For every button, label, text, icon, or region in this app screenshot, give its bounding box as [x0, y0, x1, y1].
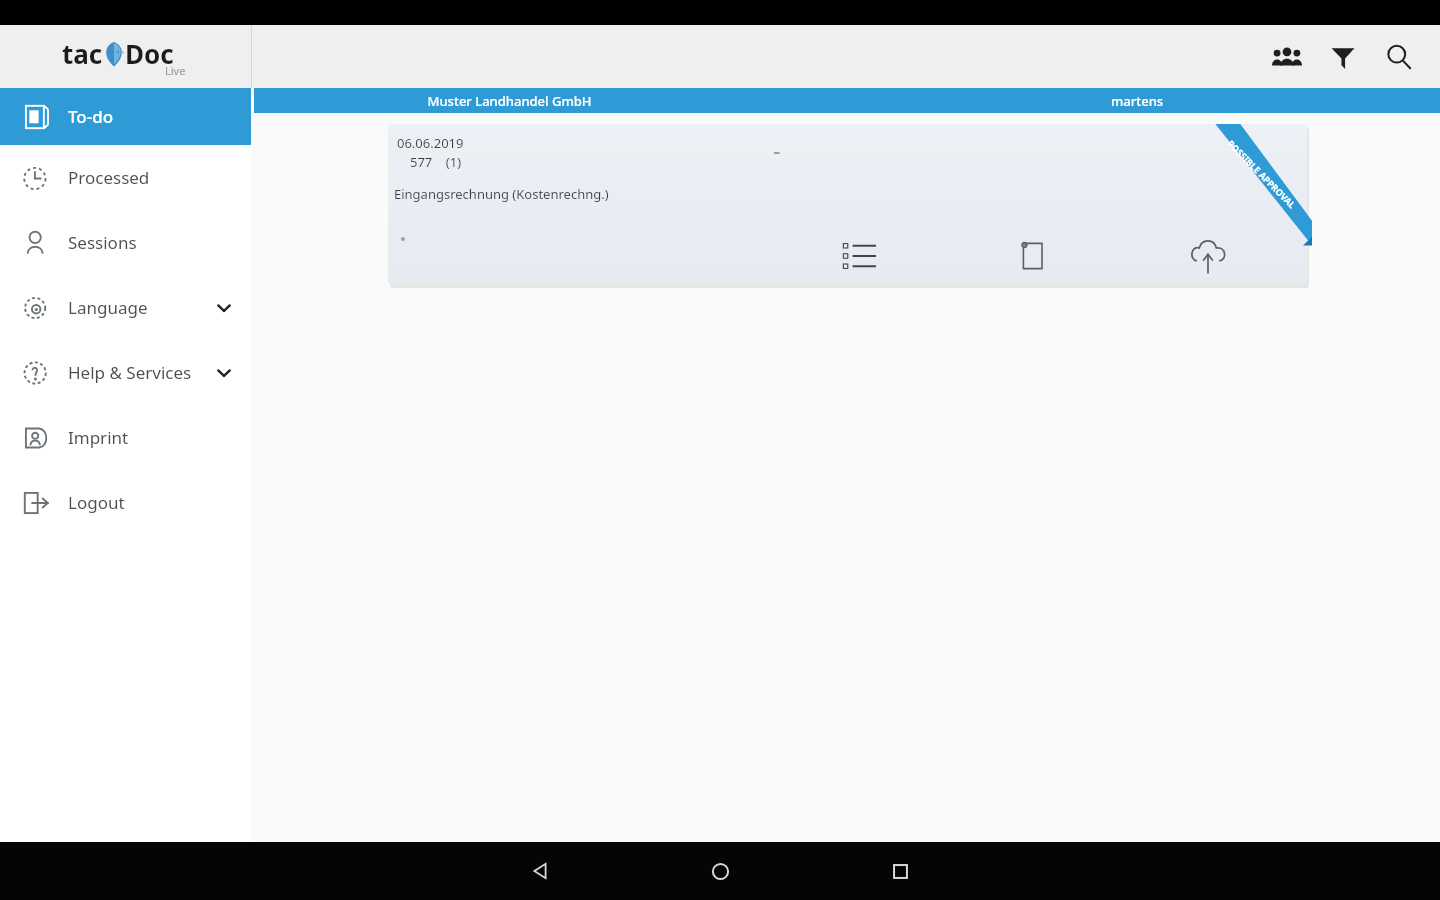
- staticText: 06.06.2019: [397, 134, 464, 152]
- button[interactable]: 06.06.2019: [388, 124, 1307, 284]
- button[interactable]: Upload to cloud: [1178, 234, 1238, 278]
- button[interactable]: Help & Services: [0, 340, 251, 405]
- staticText: martens: [1111, 92, 1164, 110]
- button[interactable]: Processed: [0, 145, 251, 210]
- button[interactable]: tac: [0, 25, 251, 88]
- button[interactable]: Sessions: [0, 210, 251, 275]
- button[interactable]: Recent apps: [865, 842, 935, 900]
- button[interactable]: Language: [0, 275, 251, 340]
- button[interactable]: Filter: [1324, 38, 1362, 76]
- staticText: Live: [165, 63, 186, 78]
- button[interactable]: To-do: [0, 88, 251, 145]
- button[interactable]: Document: [1005, 234, 1061, 278]
- staticText: Language: [68, 296, 148, 319]
- staticText: To-do: [68, 105, 114, 128]
- button[interactable]: Home: [685, 842, 755, 900]
- staticText: tac: [62, 36, 103, 71]
- button[interactable]: Logout: [0, 470, 251, 535]
- button[interactable]: Imprint: [0, 405, 251, 470]
- button[interactable]: Search: [1380, 38, 1418, 76]
- staticText: 577 (1): [410, 153, 462, 171]
- staticText: POSSIBLE APPROVAL: [1225, 137, 1299, 211]
- staticText: Sessions: [68, 231, 137, 254]
- staticText: Eingangsrechnung (Kostenrechng.): [394, 185, 609, 203]
- staticText: Imprint: [68, 426, 129, 449]
- staticText: Help & Services: [68, 361, 192, 384]
- staticText: Muster Landhandel GmbH: [427, 92, 592, 110]
- button[interactable]: Back: [505, 842, 575, 900]
- button[interactable]: Positions list: [831, 234, 887, 278]
- staticText: Doc: [125, 36, 174, 71]
- staticText: Processed: [68, 166, 150, 189]
- staticText: Logout: [68, 491, 125, 514]
- button[interactable]: People: [1268, 38, 1306, 76]
